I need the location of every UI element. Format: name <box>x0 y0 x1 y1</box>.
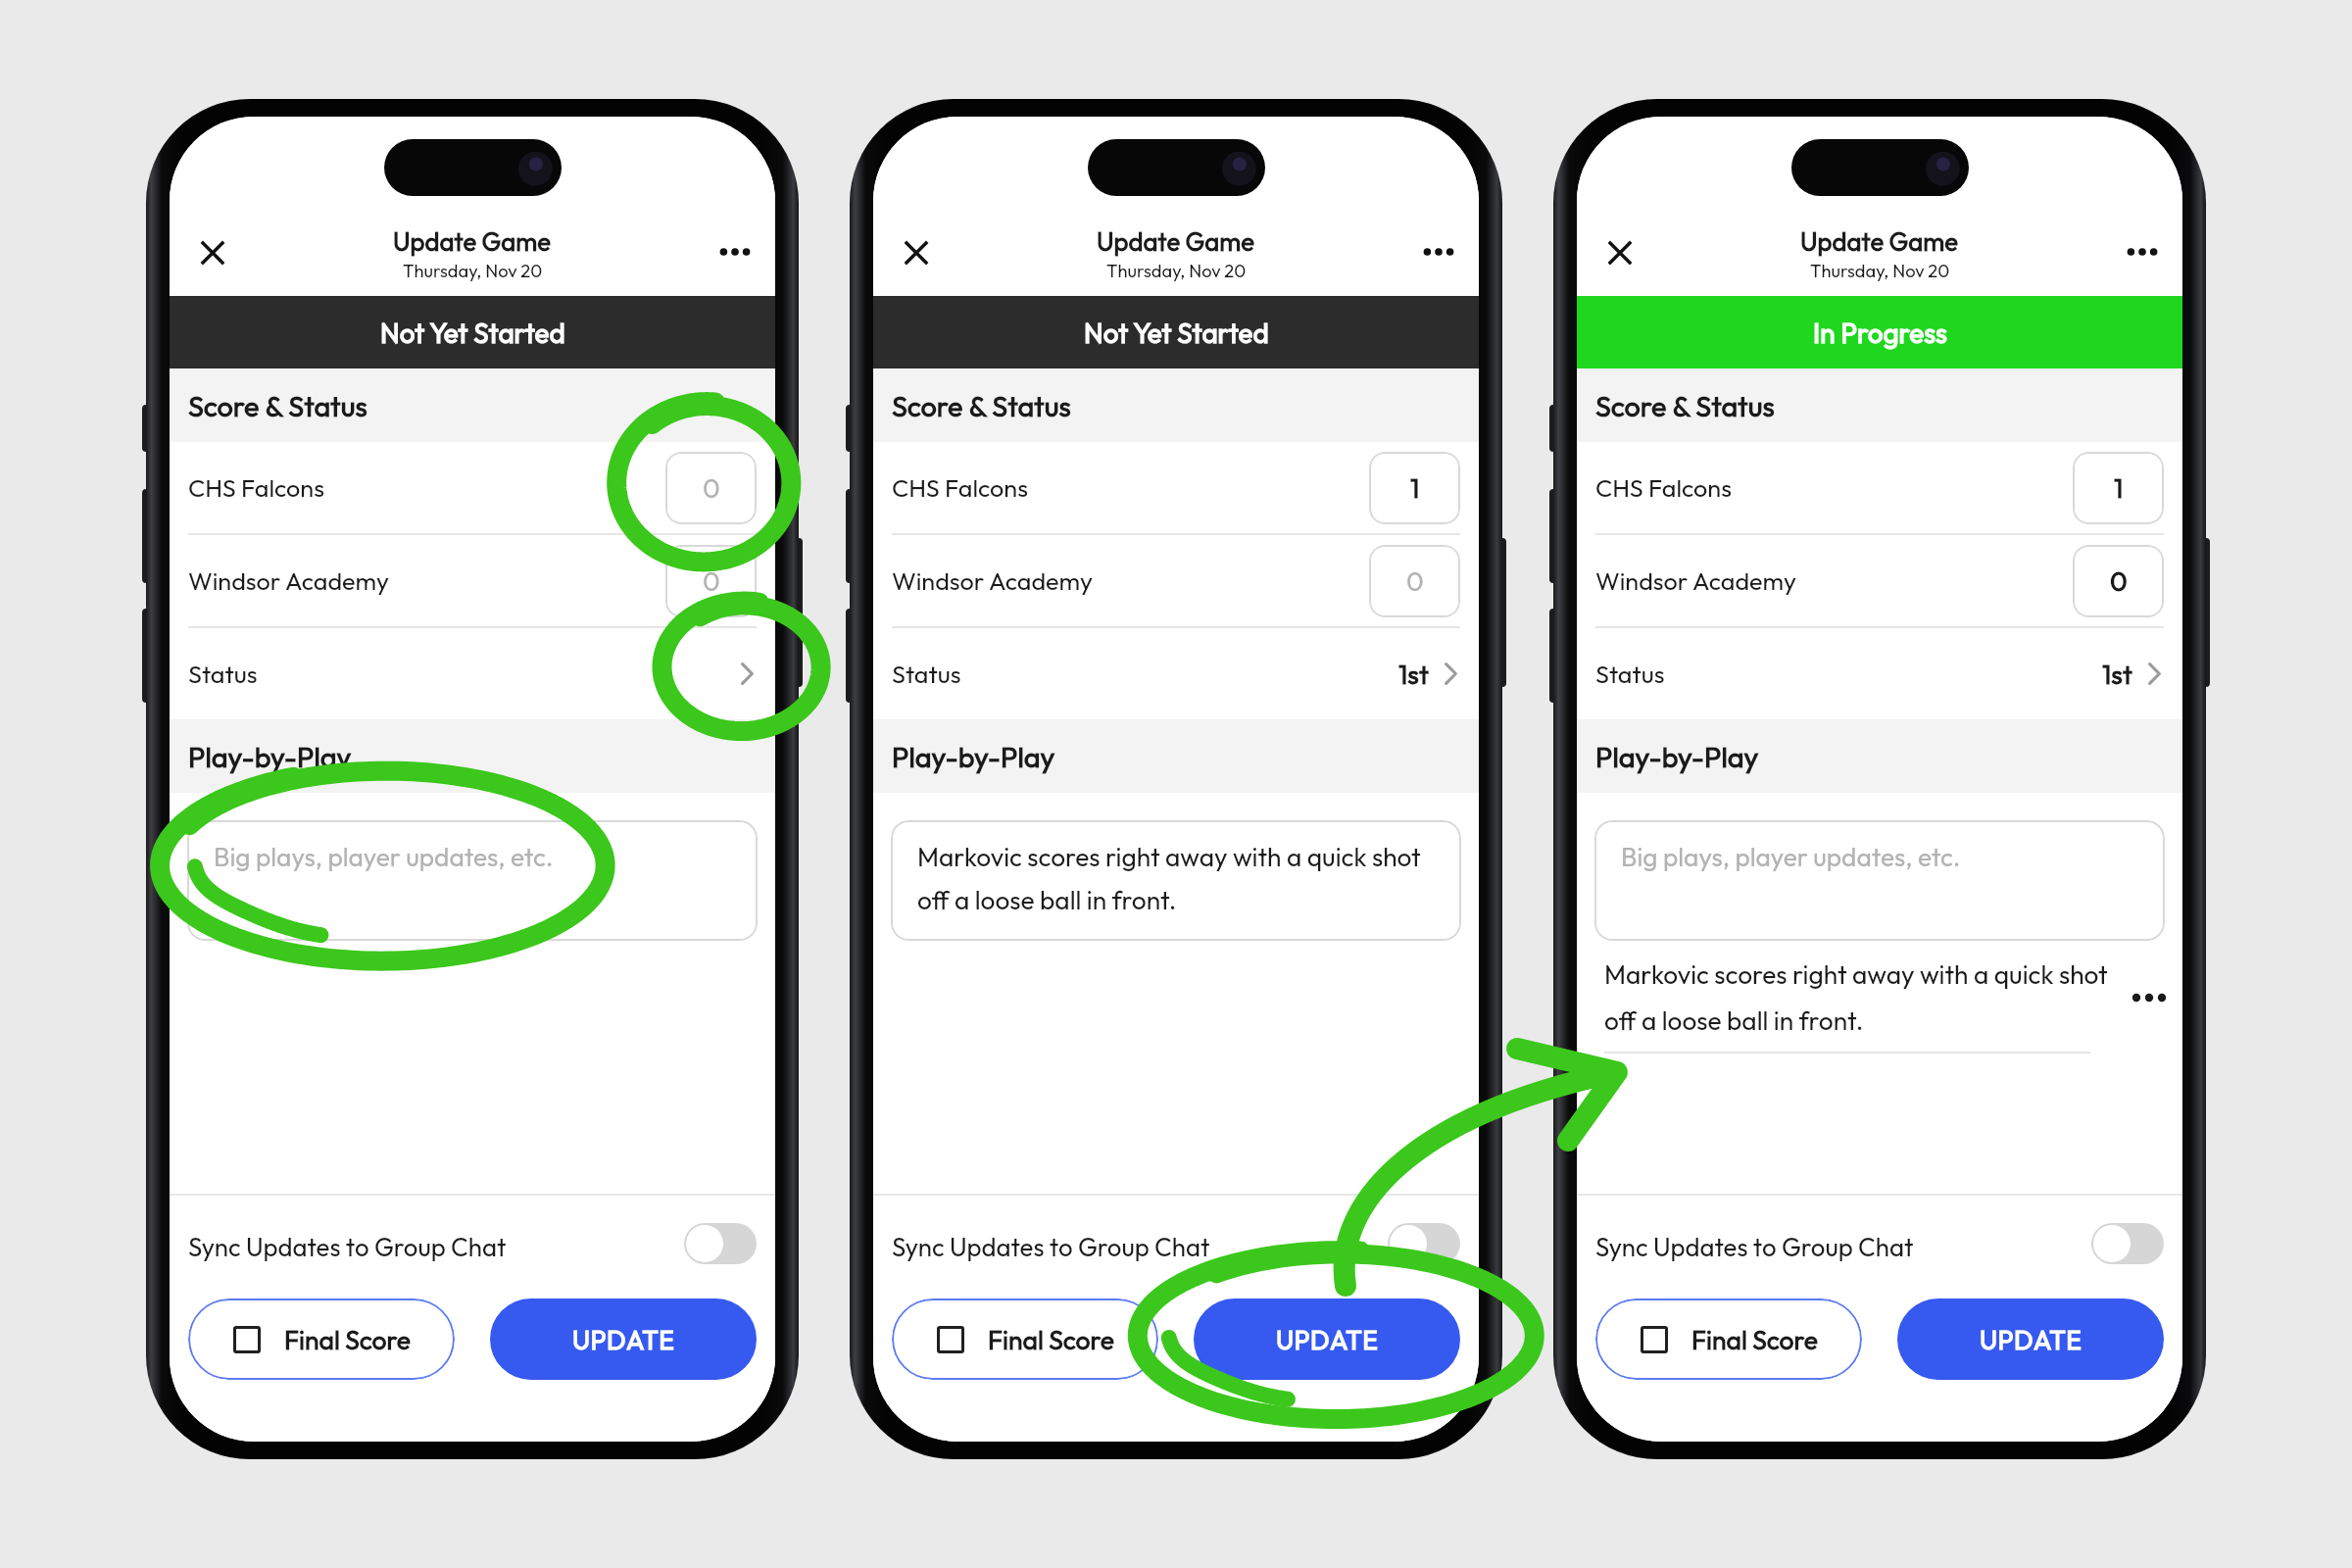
staticText: Windsor Academy <box>1595 565 2073 597</box>
staticText: Status <box>188 659 741 690</box>
staticText: Update Game <box>1800 225 1959 257</box>
staticText: Score & Status <box>1595 388 1775 423</box>
staticText: 0 <box>1406 564 1424 598</box>
button[interactable]: 0 <box>2073 545 2164 617</box>
button[interactable]: More options <box>1411 232 1466 271</box>
button[interactable]: In Progress <box>1577 296 2182 368</box>
button[interactable]: More options <box>708 232 762 271</box>
staticText: Not Yet Started <box>380 316 565 350</box>
button[interactable]: UPDATE <box>1897 1298 2164 1380</box>
staticText: Final Score <box>1691 1323 1818 1355</box>
button[interactable]: Final Score <box>188 1298 455 1380</box>
staticText: Play-by-Play <box>188 739 352 774</box>
staticText: Update Game <box>393 225 552 257</box>
staticText: CHS Falcons <box>892 472 1369 504</box>
button[interactable]: Big plays, player updates, etc. <box>187 820 758 941</box>
button[interactable]: Sync Updates to Group Chat <box>1577 1196 2182 1298</box>
staticText: Update Game <box>1097 225 1255 257</box>
button[interactable]: UPDATE <box>490 1298 757 1380</box>
button[interactable]: Close <box>185 225 240 280</box>
button[interactable]: Final Score <box>892 1298 1158 1380</box>
staticText: Sync Updates to Group Chat <box>188 1231 684 1263</box>
button[interactable]: Final Score <box>1595 1298 1862 1380</box>
staticText: Status <box>892 659 1398 690</box>
button[interactable]: More options <box>2115 232 2170 271</box>
staticText: Thursday, Nov 20 <box>1810 260 1950 282</box>
staticText: Play-by-Play <box>892 739 1055 774</box>
button[interactable]: Entry options <box>2128 980 2171 1015</box>
button[interactable]: Close <box>889 225 944 280</box>
staticText: CHS Falcons <box>1595 472 2073 504</box>
button[interactable]: UPDATE <box>1194 1298 1460 1380</box>
staticText: 1 <box>2114 471 2124 505</box>
button[interactable]: Big plays, player updates, etc. <box>1594 820 2165 941</box>
staticText: UPDATE <box>1276 1323 1379 1355</box>
staticText: Play-by-Play <box>1595 739 1759 774</box>
staticText: Thursday, Nov 20 <box>1106 260 1247 282</box>
staticText: 0 <box>703 564 720 598</box>
staticText: UPDATE <box>572 1323 675 1355</box>
button[interactable]: 0 <box>1369 545 1460 617</box>
staticText: Sync Updates to Group Chat <box>892 1231 1388 1263</box>
staticText: Score & Status <box>188 388 367 423</box>
staticText: 1st <box>1398 658 1429 691</box>
staticText: 0 <box>2110 564 2128 598</box>
staticText: 1st <box>2102 658 2132 691</box>
staticText: Big plays, player updates, etc. <box>214 841 554 873</box>
staticText: Windsor Academy <box>892 565 1369 597</box>
staticText: Final Score <box>284 1323 411 1355</box>
staticText: Not Yet Started <box>1084 316 1269 350</box>
staticText: 1 <box>1410 471 1420 505</box>
button[interactable]: Status <box>170 628 775 719</box>
button[interactable]: Close <box>1592 225 1647 280</box>
staticText: Final Score <box>988 1323 1114 1355</box>
button[interactable]: 1 <box>1369 452 1460 524</box>
button[interactable]: Sync Updates to Group Chat <box>873 1196 1479 1298</box>
button[interactable]: 1 <box>2073 452 2164 524</box>
button[interactable]: Not Yet Started <box>873 296 1479 368</box>
button[interactable]: 0 <box>665 452 757 524</box>
staticText: Big plays, player updates, etc. <box>1621 841 1961 873</box>
staticText: 0 <box>703 471 720 505</box>
button[interactable]: Sync Updates to Group Chat <box>170 1196 775 1298</box>
staticText: In Progress <box>1813 316 1947 350</box>
button[interactable]: Not Yet Started <box>170 296 775 368</box>
staticText: Status <box>1595 659 2102 690</box>
staticText: Score & Status <box>892 388 1071 423</box>
button[interactable]: Status <box>873 628 1479 719</box>
staticText: CHS Falcons <box>188 472 665 504</box>
button[interactable]: 0 <box>665 545 757 617</box>
button[interactable]: Status <box>1577 628 2182 719</box>
staticText: UPDATE <box>1980 1323 2082 1355</box>
staticText: Markovic scores right away with a quick … <box>917 841 1444 916</box>
staticText: Markovic scores right away with a quick … <box>1604 958 2116 1036</box>
staticText: Sync Updates to Group Chat <box>1595 1231 2091 1263</box>
staticText: Thursday, Nov 20 <box>403 260 543 282</box>
button[interactable]: Markovic scores right away with a quick … <box>891 820 1461 941</box>
staticText: Windsor Academy <box>188 565 665 597</box>
